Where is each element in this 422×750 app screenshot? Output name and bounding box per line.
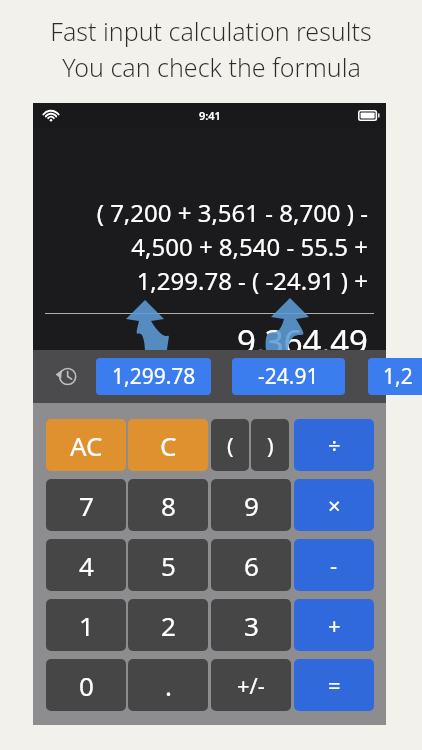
button[interactable]: 1 xyxy=(46,599,126,651)
staticText: 1 xyxy=(79,608,94,643)
staticText: 8 xyxy=(161,488,176,523)
button[interactable]: ÷ xyxy=(294,419,374,471)
button[interactable]: History xyxy=(55,365,78,388)
button[interactable]: . xyxy=(128,659,208,711)
staticText: 1,2 xyxy=(383,362,413,391)
staticText: 5 xyxy=(161,548,176,583)
button[interactable]: 5 xyxy=(128,539,208,591)
staticText: 1,299.78 xyxy=(112,362,196,391)
button[interactable]: ( xyxy=(211,419,249,471)
button[interactable]: × xyxy=(294,479,374,531)
button[interactable]: - xyxy=(294,539,374,591)
staticText: You can check the formula xyxy=(62,50,361,84)
staticText: 4,500 + 8,540 - 55.5 + xyxy=(33,230,368,263)
staticText: ( 7,200 + 3,561 - 8,700 ) - xyxy=(33,196,368,229)
staticText: 1,299.78 - ( -24.91 ) + xyxy=(33,264,368,297)
staticText: ÷ xyxy=(328,430,341,460)
staticText: 7 xyxy=(79,488,94,523)
staticText: AC xyxy=(70,428,103,463)
button[interactable]: 6 xyxy=(211,539,291,591)
staticText: 9,364.49 xyxy=(33,319,368,350)
staticText: 9:41 xyxy=(199,108,221,123)
button[interactable]: 1,299.78 xyxy=(96,358,211,395)
staticText: 9 xyxy=(244,488,259,523)
button[interactable]: + xyxy=(294,599,374,651)
staticText: 0 xyxy=(79,668,94,703)
button[interactable]: 0 xyxy=(46,659,126,711)
staticText: +/- xyxy=(237,670,265,700)
button[interactable]: -24.91 xyxy=(232,358,345,395)
staticText: ) xyxy=(267,430,274,460)
button[interactable]: 4 xyxy=(46,539,126,591)
staticText: Fast input calculation results xyxy=(50,14,372,48)
staticText: 4 xyxy=(79,548,94,583)
button[interactable]: 9 xyxy=(211,479,291,531)
staticText: + xyxy=(328,610,341,640)
button[interactable]: 1,2 xyxy=(368,358,422,395)
button[interactable]: = xyxy=(294,659,374,711)
button[interactable]: 7 xyxy=(46,479,126,531)
button[interactable]: 8 xyxy=(128,479,208,531)
staticText: C xyxy=(160,428,177,463)
button[interactable]: AC xyxy=(46,419,126,471)
staticText: 2 xyxy=(161,608,176,643)
button[interactable]: ) xyxy=(251,419,289,471)
staticText: . xyxy=(165,668,172,703)
staticText: 3 xyxy=(244,608,259,643)
button[interactable]: 2 xyxy=(128,599,208,651)
staticText: -24.91 xyxy=(258,362,319,391)
button[interactable]: +/- xyxy=(211,659,291,711)
staticText: 6 xyxy=(244,548,259,583)
staticText: × xyxy=(328,490,341,520)
button[interactable]: C xyxy=(128,419,208,471)
staticText: - xyxy=(330,550,338,580)
button[interactable]: 3 xyxy=(211,599,291,651)
staticText: = xyxy=(328,670,341,700)
staticText: ( xyxy=(227,430,234,460)
